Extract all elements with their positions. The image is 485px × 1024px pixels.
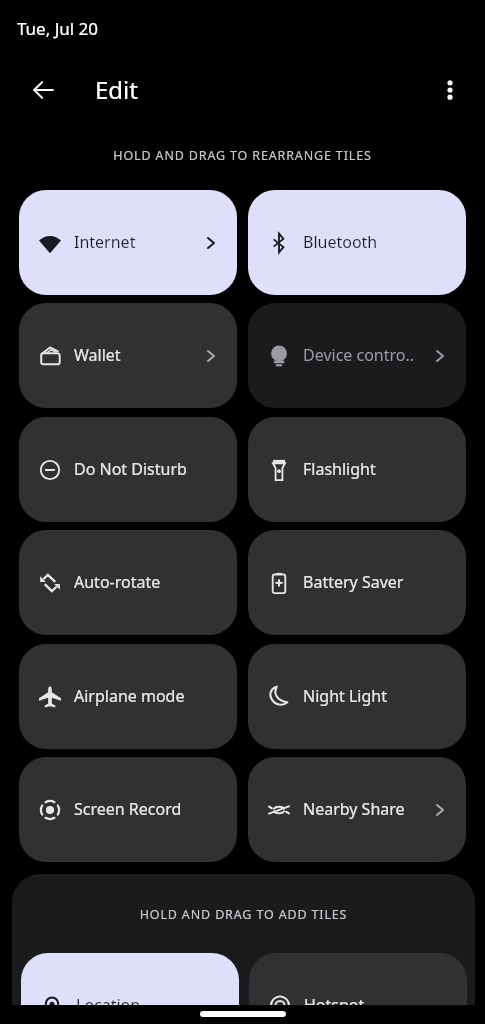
staticText: HOLD AND DRAG TO REARRANGE TILES [0,147,485,164]
staticText: Tue, Jul 20 [17,17,99,40]
staticText: Auto-rotate [74,571,215,593]
button[interactable]: Location [21,953,239,1024]
button[interactable]: Wallet [19,303,237,408]
button[interactable]: Screen Record [19,757,237,862]
staticText: Battery Saver [303,571,444,593]
button[interactable]: Flashlight [248,417,466,522]
button[interactable]: Battery Saver [248,530,466,635]
button[interactable]: Hotspot [249,953,467,1024]
button[interactable]: Night Light [248,644,466,749]
staticText: Screen Record [74,798,215,820]
staticText: Do Not Disturb [74,458,215,480]
staticText: Nearby Share [303,798,436,820]
button[interactable]: Auto-rotate [19,530,237,635]
button[interactable]: Device contro.. [248,303,466,408]
button[interactable]: Internet [19,190,237,295]
button[interactable]: Do Not Disturb [19,417,237,522]
button[interactable]: Airplane mode [19,644,237,749]
staticText: Device contro.. [303,344,436,366]
staticText: Airplane mode [74,685,215,707]
button[interactable]: Back [14,61,71,118]
staticText: HOLD AND DRAG TO ADD TILES [12,906,475,923]
button[interactable]: Bluetooth [248,190,466,295]
staticText: Bluetooth [303,231,444,253]
staticText: Flashlight [303,458,444,480]
staticText: Internet [74,231,207,253]
staticText: Edit [95,73,138,106]
staticText: Location [76,994,217,1016]
button[interactable]: Nearby Share [248,757,466,862]
staticText: Night Light [303,685,444,707]
staticText: Hotspot [304,994,445,1016]
staticText: Wallet [74,344,207,366]
button[interactable]: More options [421,61,478,118]
